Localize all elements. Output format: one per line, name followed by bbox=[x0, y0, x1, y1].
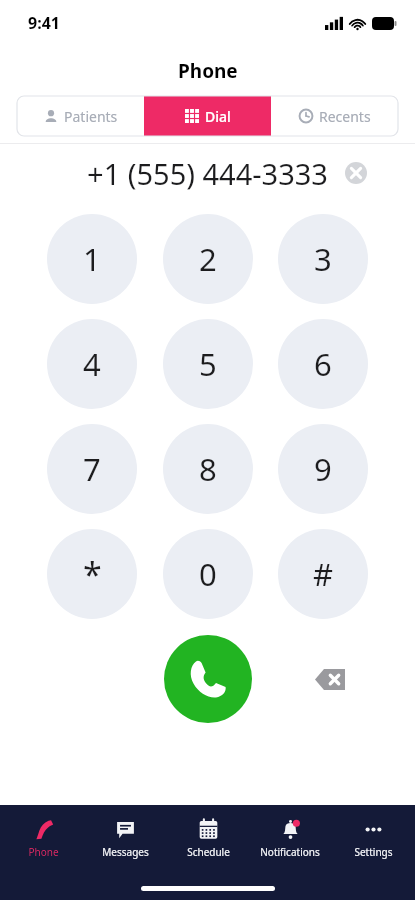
staticText: 0 bbox=[199, 553, 217, 595]
staticText: 9 bbox=[314, 448, 332, 490]
staticText: 1 bbox=[83, 238, 101, 280]
button[interactable]: Call bbox=[164, 635, 252, 723]
button[interactable]: 0 bbox=[163, 529, 253, 619]
staticText: * bbox=[83, 551, 102, 597]
button[interactable]: 7 bbox=[47, 424, 137, 514]
button[interactable]: 3 bbox=[278, 214, 368, 304]
staticText: # bbox=[313, 553, 334, 595]
button[interactable]: Messages bbox=[85, 817, 165, 861]
button[interactable]: 4 bbox=[47, 319, 137, 409]
button[interactable]: 6 bbox=[278, 319, 368, 409]
button[interactable]: 5 bbox=[163, 319, 253, 409]
button[interactable]: Settings bbox=[333, 817, 413, 861]
button[interactable]: Backspace bbox=[307, 656, 353, 702]
button[interactable]: 1 bbox=[47, 214, 137, 304]
staticText: Phone bbox=[28, 845, 59, 859]
button[interactable]: Schedule bbox=[168, 817, 248, 861]
staticText: 7 bbox=[83, 448, 101, 490]
button[interactable]: Notifications bbox=[250, 817, 330, 861]
staticText: 2 bbox=[199, 238, 217, 280]
staticText: 4 bbox=[83, 343, 101, 385]
staticText: 8 bbox=[199, 448, 217, 490]
button[interactable]: Patients bbox=[17, 96, 144, 136]
staticText: Notifications bbox=[260, 845, 320, 859]
staticText: Messages bbox=[102, 845, 149, 859]
staticText: +1 (555) 444-3333 bbox=[87, 154, 328, 193]
button[interactable]: 2 bbox=[163, 214, 253, 304]
staticText: 3 bbox=[314, 238, 332, 280]
staticText: 6 bbox=[314, 343, 332, 385]
button[interactable]: 8 bbox=[163, 424, 253, 514]
button[interactable]: 9 bbox=[278, 424, 368, 514]
button[interactable]: # bbox=[278, 529, 368, 619]
staticText: 5 bbox=[199, 343, 217, 385]
staticText: Dial bbox=[205, 107, 231, 126]
staticText: Schedule bbox=[187, 845, 230, 859]
staticText: Phone bbox=[178, 58, 238, 84]
button[interactable]: Recents bbox=[271, 96, 398, 136]
button[interactable]: Phone bbox=[3, 817, 83, 861]
staticText: 9:41 bbox=[28, 12, 60, 34]
staticText: Recents bbox=[319, 107, 371, 126]
staticText: Patients bbox=[64, 107, 118, 126]
staticText: Settings bbox=[354, 845, 393, 859]
button[interactable]: * bbox=[47, 529, 137, 619]
button[interactable]: Dial bbox=[144, 96, 271, 136]
button[interactable]: Clear number bbox=[339, 156, 373, 190]
